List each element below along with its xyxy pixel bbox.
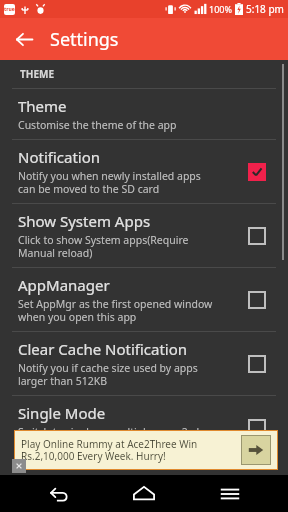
button[interactable]: Back [8,23,40,55]
button[interactable]: Theme [0,89,288,139]
staticText: Notify you if cache size used by apps la… [18,361,198,388]
staticText: Clear Cache Notification [18,339,188,359]
button[interactable]: Clear Cache Notification [0,332,288,395]
button[interactable]: Single Mode [240,411,274,445]
staticText: Customise the theme of the app [18,118,177,132]
button[interactable]: Single Mode [0,396,288,459]
button[interactable]: Show System Apps [0,204,288,267]
staticText: Notification [18,147,101,167]
button[interactable]: Open ad [241,435,271,465]
staticText: Click to show System apps(Require Manual… [18,233,189,260]
button[interactable]: Notification [0,140,288,203]
staticText: true [4,6,15,13]
staticText: Single Mode [18,403,106,423]
staticText: Settings [50,27,119,52]
staticText: Notify you when newly installed apps can… [18,169,201,196]
staticText: 100% [209,3,232,15]
button[interactable]: Home [116,475,172,512]
button[interactable]: AppManager [0,268,288,331]
button[interactable]: Recent apps [202,475,258,512]
staticText: Set AppMgr as the first opened window wh… [18,297,213,324]
staticText: 5:18 pm [246,2,284,16]
staticText: THEME [20,67,55,81]
staticText: AppManager [18,275,110,295]
button[interactable]: Show System Apps [240,219,274,253]
staticText: Theme [18,96,67,116]
staticText: Switch to single or multiple move2sd mod… [18,425,200,452]
button[interactable]: Close ad [12,459,26,473]
button[interactable]: AppManager [240,283,274,317]
staticText: Play Online Rummy at Ace2Three Win Rs.2,… [21,437,198,463]
button[interactable]: Back [30,475,86,512]
staticText: Show System Apps [18,211,151,231]
button[interactable]: Clear Cache Notification [240,347,274,381]
button[interactable]: Play Online Rummy at Ace2Three Win Rs.2,… [14,430,278,470]
button[interactable]: Notification [240,155,274,189]
